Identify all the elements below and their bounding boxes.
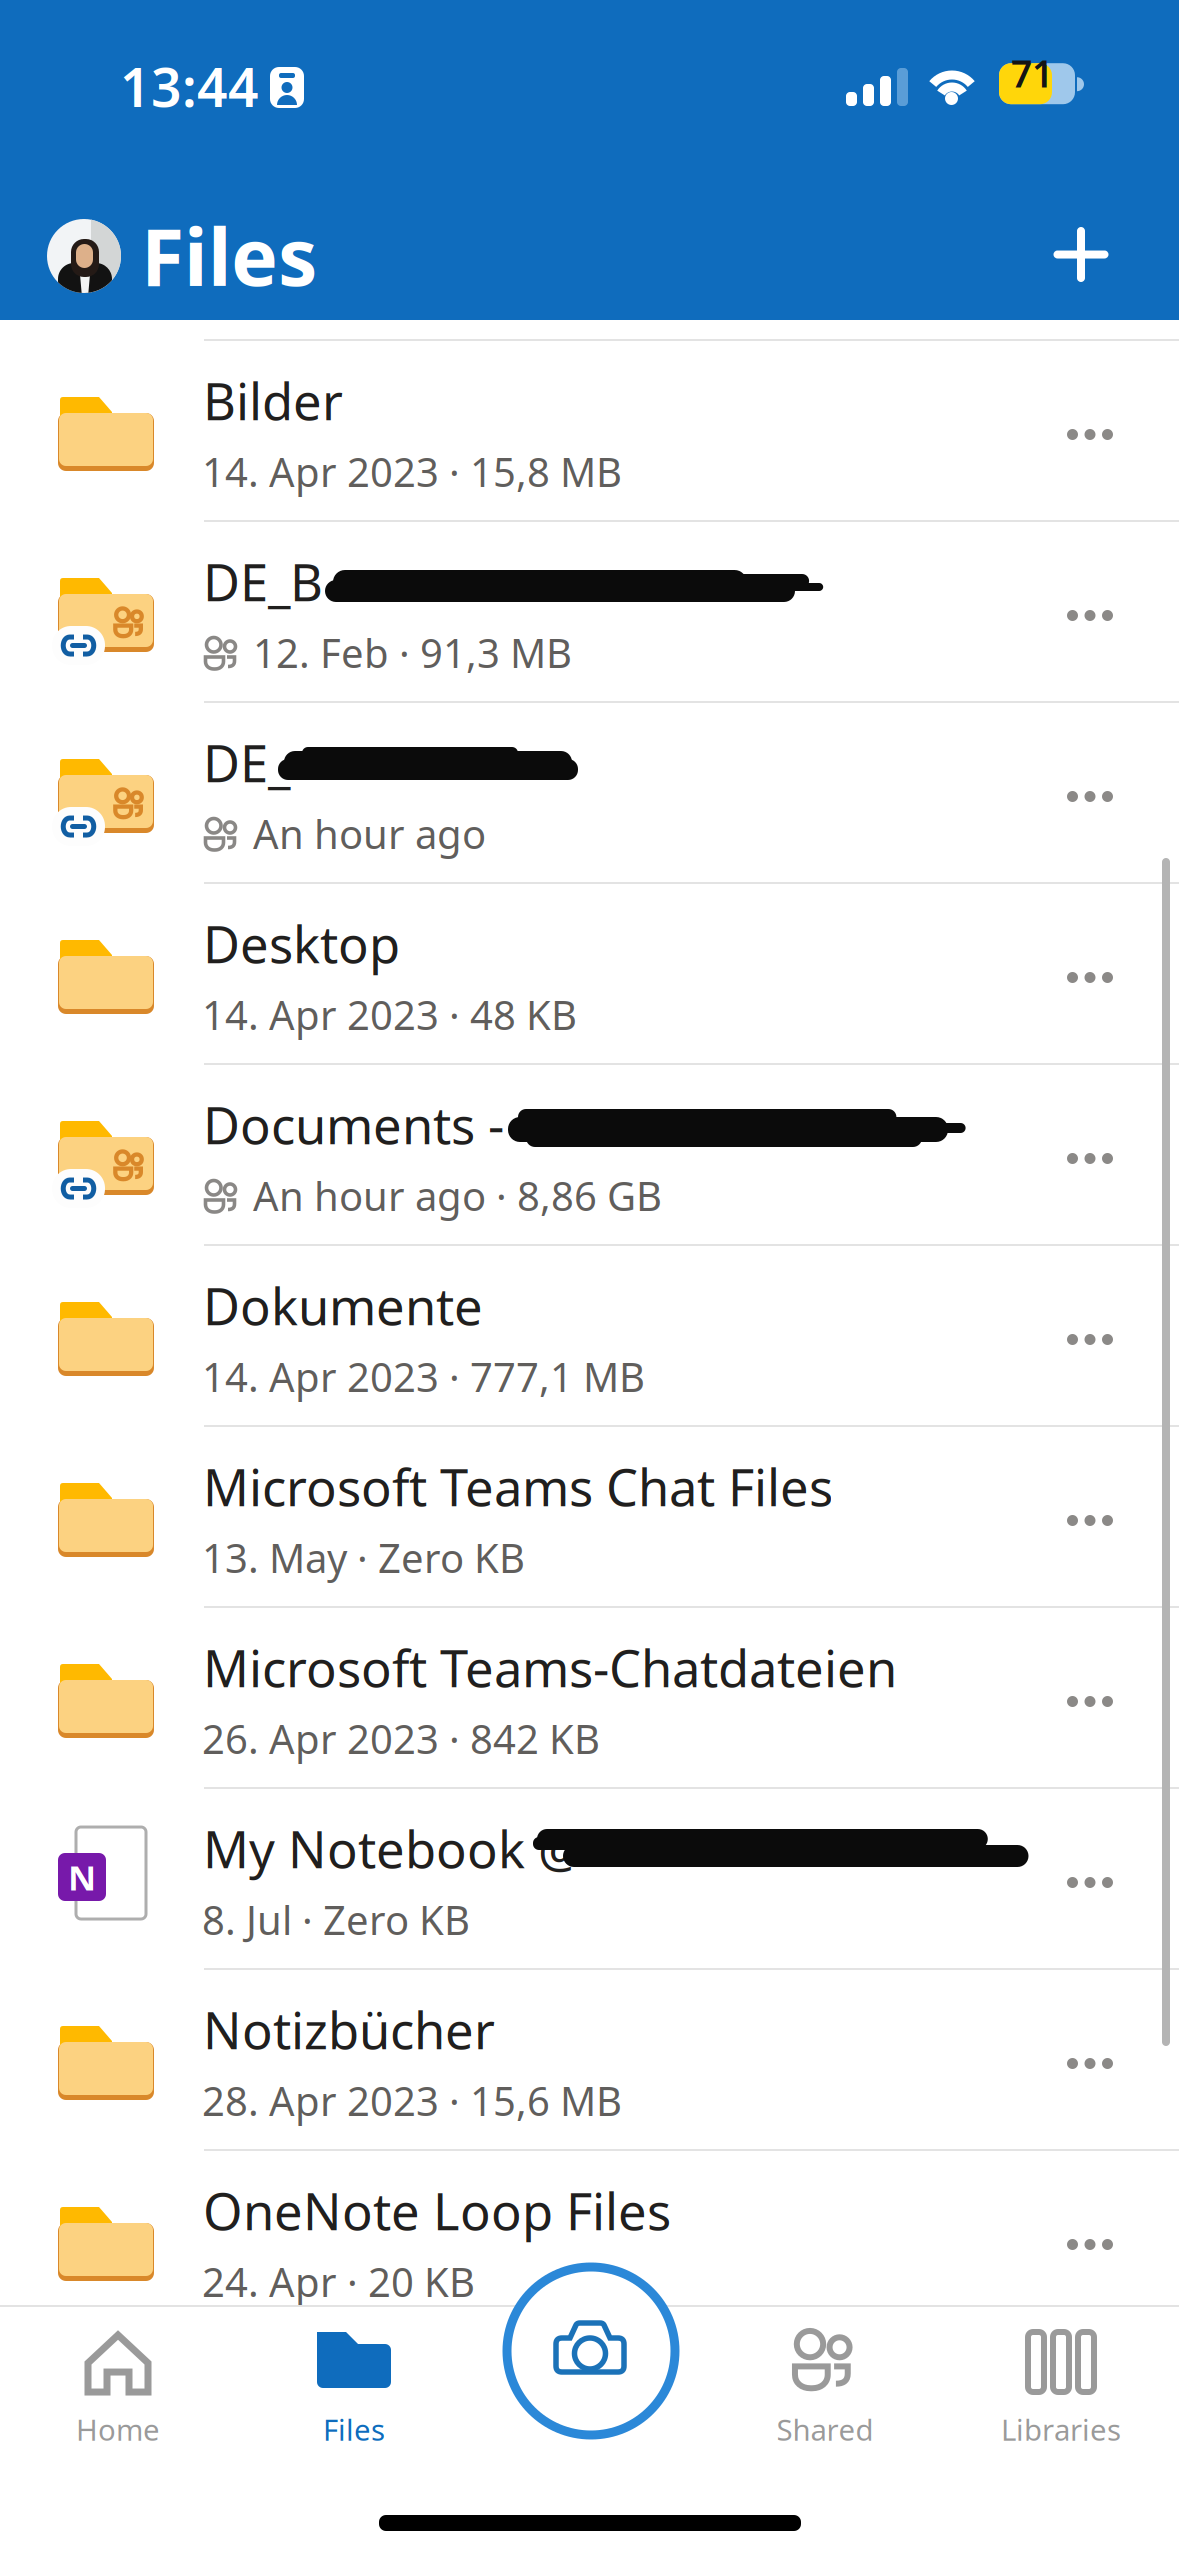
staticText: An hour ago [253, 807, 486, 860]
staticText: Dokumente [203, 1272, 483, 1339]
button[interactable]: DE_B [0, 522, 1179, 703]
button[interactable]: Camera [503, 2263, 679, 2439]
button[interactable]: Desktop [0, 884, 1179, 1065]
staticText: My Notebook @ [203, 1815, 584, 1882]
button[interactable]: Account [47, 219, 121, 293]
staticText: Libraries [1001, 2410, 1121, 2449]
button[interactable] [0, 160, 1179, 341]
staticText: Notizbücher [203, 1996, 495, 2063]
staticText: 14. Apr 2023 · 48 KB [202, 988, 577, 1041]
staticText: Microsoft Teams Chat Files [203, 1453, 833, 1520]
staticText: Microsoft Teams-Chatdateien [203, 1634, 897, 1701]
button[interactable]: Home [0, 2305, 236, 2465]
staticText: N [68, 1854, 96, 1900]
staticText: 13:44 [120, 51, 259, 122]
staticText: 14. Apr 2023 · 777,1 MB [202, 1350, 645, 1403]
staticText: 14. Apr 2023 · 15,8 MB [202, 445, 622, 498]
button[interactable]: Microsoft Teams-Chatdateien [0, 1608, 1179, 1789]
staticText: Files [141, 203, 317, 307]
staticText: 71 [1011, 48, 1053, 98]
button[interactable]: Files [236, 2305, 472, 2465]
staticText: Files [323, 2410, 385, 2449]
button[interactable]: Libraries [943, 2305, 1179, 2465]
button[interactable]: Documents - [0, 1065, 1179, 1246]
staticText: DE_ [203, 729, 290, 796]
staticText: 12. Feb · 91,3 MB [253, 626, 572, 679]
staticText: An hour ago · 8,86 GB [253, 1169, 662, 1222]
staticText: Home [76, 2410, 160, 2449]
staticText: Shared [776, 2410, 873, 2449]
staticText: 13. May · Zero KB [202, 1531, 525, 1584]
staticText: OneNote Loop Files [203, 2177, 671, 2244]
button[interactable]: Shared [707, 2305, 943, 2465]
button[interactable]: Bilder [0, 341, 1179, 522]
button[interactable]: DE_ [0, 703, 1179, 884]
staticText: Desktop [203, 910, 400, 977]
button[interactable]: Notizbücher [0, 1970, 1179, 2151]
button[interactable]: Microsoft Teams Chat Files [0, 1427, 1179, 1608]
staticText: 24. Apr · 20 KB [202, 2255, 475, 2308]
staticText: Bilder [203, 367, 343, 434]
staticText: 8. Jul · Zero KB [202, 1893, 470, 1946]
button[interactable]: N [0, 1789, 1179, 1970]
button[interactable]: Add [1031, 205, 1131, 305]
button[interactable]: OneNote Loop Files [0, 2151, 1179, 2332]
staticText: 28. Apr 2023 · 15,6 MB [202, 2074, 622, 2127]
staticText: 26. Apr 2023 · 842 KB [202, 1712, 600, 1765]
button[interactable]: Dokumente [0, 1246, 1179, 1427]
staticText: DE_B [203, 548, 323, 615]
staticText: Documents - [203, 1091, 517, 1158]
